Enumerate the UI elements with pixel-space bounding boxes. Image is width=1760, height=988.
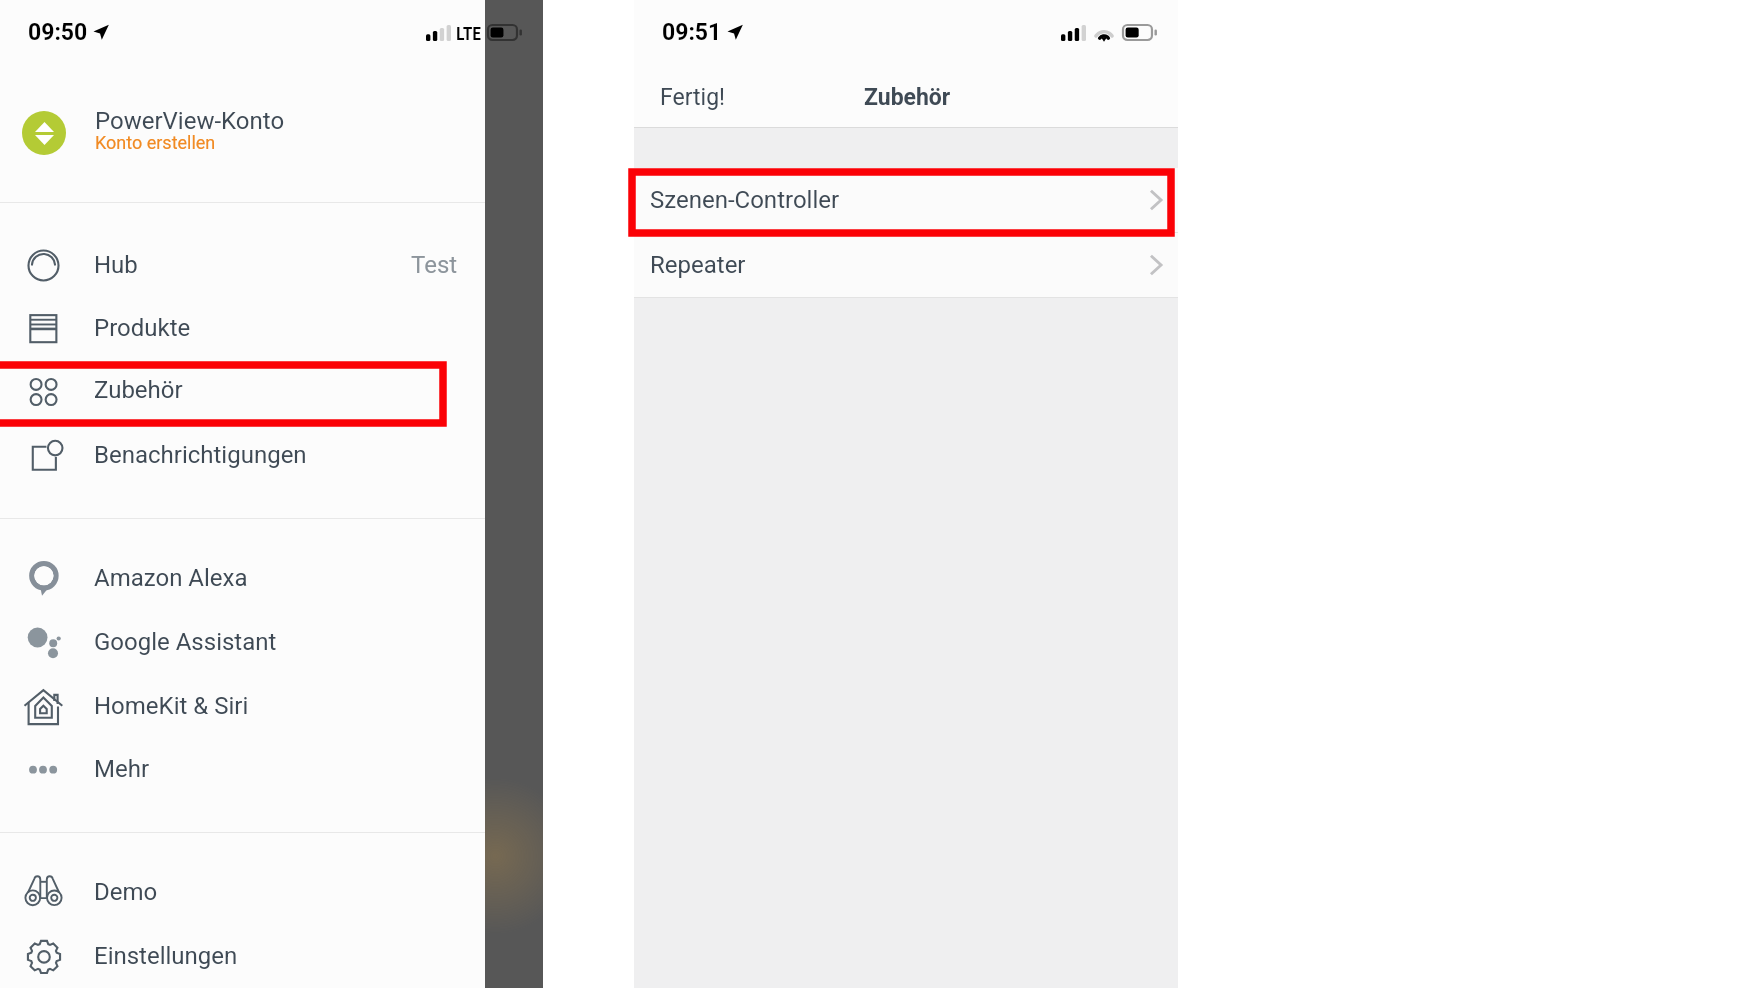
other: Open Szenen-Controller xyxy=(1150,190,1162,210)
staticText: 09:51 xyxy=(662,19,722,46)
staticText: Zubehör xyxy=(864,84,951,111)
button[interactable]: HomeKit & Siri xyxy=(0,674,485,738)
staticText: Konto erstellen xyxy=(95,132,216,153)
button[interactable]: Amazon Alexa xyxy=(0,546,485,610)
button[interactable]: Benachrichtigungen xyxy=(0,423,485,487)
button[interactable]: PowerView-Konto xyxy=(0,90,485,176)
staticText: Zubehör xyxy=(94,376,183,404)
staticText: Produkte xyxy=(94,314,191,342)
staticText: Mehr xyxy=(94,755,150,783)
button[interactable]: Einstellungen xyxy=(0,924,485,988)
button[interactable]: Repeater xyxy=(634,233,1178,297)
button[interactable]: Zubehör xyxy=(0,358,485,422)
button[interactable]: Mehr xyxy=(0,737,485,801)
button[interactable]: Produkte xyxy=(0,296,485,360)
staticText: Amazon Alexa xyxy=(94,564,248,592)
staticText: 09:50 xyxy=(28,19,88,46)
staticText: Hub xyxy=(94,251,138,279)
staticText: Fertig! xyxy=(660,84,725,111)
button[interactable]: Hub xyxy=(0,233,485,297)
staticText: HomeKit & Siri xyxy=(94,692,249,720)
button[interactable]: Google Assistant xyxy=(0,610,485,674)
staticText: PowerView-Konto xyxy=(95,107,285,135)
button[interactable]: Demo xyxy=(0,860,485,924)
staticText: Repeater xyxy=(650,251,746,279)
other: Open Repeater xyxy=(1150,255,1162,275)
button[interactable]: Fertig! xyxy=(648,76,737,119)
staticText: Szenen-Controller xyxy=(650,186,840,214)
staticText: LTE xyxy=(456,23,482,44)
staticText: Demo xyxy=(94,878,158,906)
staticText: Einstellungen xyxy=(94,942,238,970)
staticText: Test xyxy=(411,251,458,279)
staticText: Benachrichtigungen xyxy=(94,441,307,469)
staticText: Google Assistant xyxy=(94,628,277,656)
button[interactable]: Szenen-Controller xyxy=(634,168,1178,232)
